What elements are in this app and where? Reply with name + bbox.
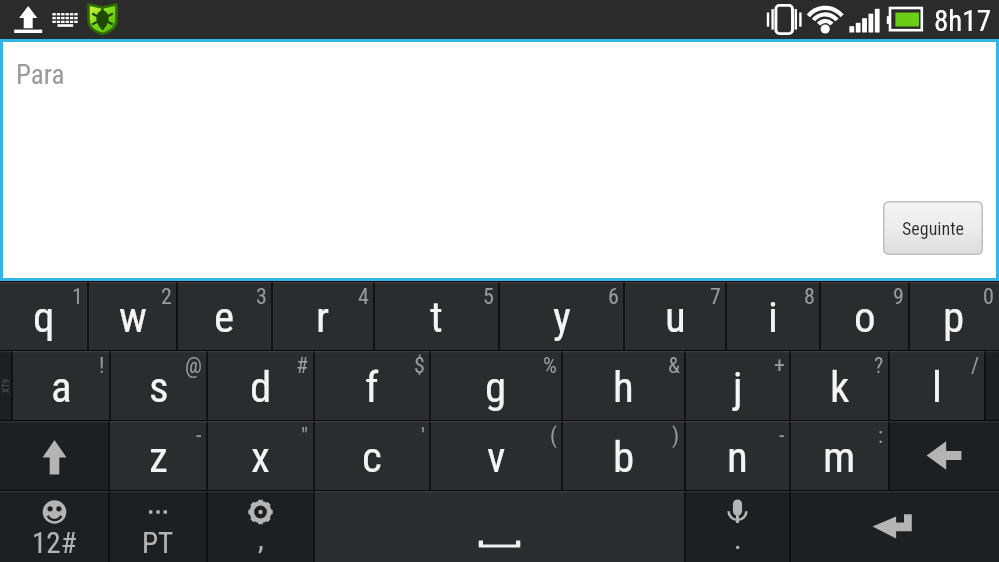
staticText: 2 [161,284,172,310]
staticText: 1 [72,284,83,310]
other: emoji [0,491,109,562]
staticText: z [149,432,168,482]
button[interactable]: mic [685,491,790,562]
button[interactable]: Seguinte [883,201,983,255]
button[interactable]: b [562,421,685,490]
button[interactable]: k [790,351,889,420]
button[interactable]: j [685,351,790,420]
button[interactable]: shift [0,421,109,490]
staticText: d [250,362,272,412]
button[interactable]: z [109,421,207,490]
staticText: s [149,362,169,412]
staticText: - [779,423,785,449]
button[interactable]: w [88,282,177,350]
button[interactable]: enter [790,491,999,562]
staticText: XT9 [1,378,12,393]
staticText: - [196,423,202,449]
staticText: y [553,292,571,342]
staticText: f [365,362,379,412]
button[interactable]: XT9 [0,351,12,420]
staticText: : [878,423,884,449]
staticText: 9 [893,284,904,310]
staticText: ' [421,423,425,449]
staticText: 5 [483,284,494,310]
button[interactable]: p [909,282,999,350]
staticText: / [971,353,980,379]
staticText: k [830,362,850,412]
button[interactable]: x [207,421,314,490]
button[interactable]: space [314,491,685,562]
staticText: 12# [32,526,77,560]
staticText: c [362,432,382,482]
other: shift [0,421,109,490]
staticText: ( [550,423,557,449]
staticText: % [543,353,557,379]
staticText: 0 [983,284,994,310]
button[interactable]: t [374,282,499,350]
staticText: n [727,432,748,482]
staticText: m [823,432,856,482]
staticText: ) [672,423,680,449]
button[interactable]: e [177,282,272,350]
staticText: g [485,362,507,412]
button[interactable]: dots [109,491,207,562]
other: gear [207,491,314,562]
button[interactable]: l [889,351,985,420]
staticText: e [214,292,235,342]
staticText: x [251,432,270,482]
staticText: 6 [608,284,619,310]
button[interactable]: i [726,282,820,350]
button[interactable]: q [0,282,88,350]
staticText: h [613,362,634,412]
staticText: 7 [710,284,721,310]
button[interactable]: emoji [0,491,109,562]
other: mic [685,491,790,562]
button[interactable]: n [685,421,790,490]
staticText: @ [185,353,202,379]
button[interactable]: y [499,282,624,350]
button[interactable] [985,351,999,420]
staticText: 3 [256,284,267,310]
staticText: Seguinte [902,218,964,239]
staticText: w [119,292,147,342]
button[interactable]: u [624,282,726,350]
button[interactable]: g [430,351,562,420]
staticText: 8h17 [934,4,991,38]
staticText: . [734,522,742,556]
other: back [889,421,999,490]
other: dots [109,491,207,562]
staticText: ? [874,353,884,379]
staticText: , [258,522,264,556]
button[interactable]: d [207,351,314,420]
staticText: b [613,432,635,482]
staticText: 4 [358,284,369,310]
staticText: l [932,362,942,412]
button[interactable]: back [889,421,999,490]
other: enter [790,491,999,562]
staticText: v [487,432,506,482]
button[interactable]: h [562,351,685,420]
staticText: 8 [804,284,815,310]
button[interactable]: f [314,351,430,420]
staticText: " [301,423,309,449]
staticText: PT [142,526,174,560]
staticText: $ [414,353,425,379]
staticText: t [430,292,443,342]
staticText: & [668,353,680,379]
staticText: j [733,362,743,412]
button[interactable]: s [110,351,207,420]
staticText: o [854,292,876,342]
staticText: p [943,292,965,342]
staticText: + [774,353,785,379]
button[interactable]: r [272,282,374,350]
staticText: r [316,292,330,342]
button[interactable]: v [430,421,562,490]
staticText: q [33,292,55,342]
button[interactable]: a [12,351,110,420]
staticText: u [665,292,686,342]
button[interactable]: m [790,421,889,490]
button[interactable]: gear [207,491,314,562]
button[interactable]: c [314,421,430,490]
staticText: a [51,362,72,412]
button[interactable]: o [820,282,909,350]
